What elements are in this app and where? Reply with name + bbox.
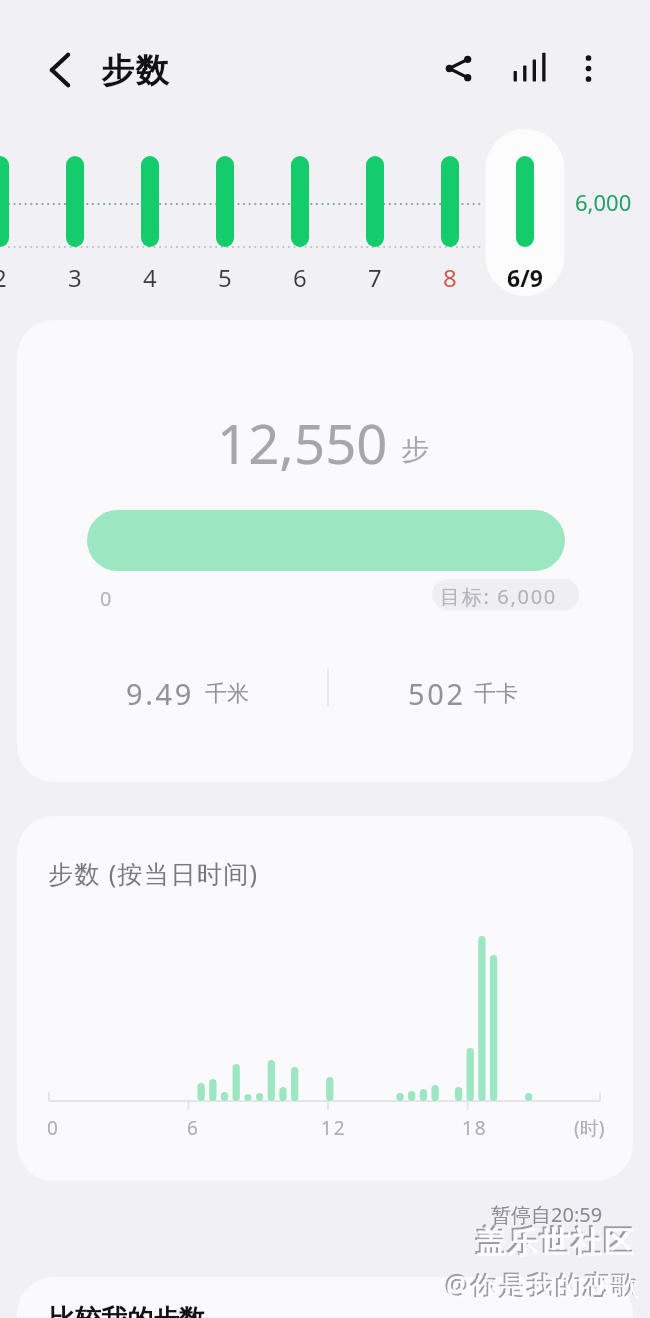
staticText: 步 [401,432,429,467]
staticText: 暂停自20:59 [491,1201,603,1228]
staticText: 盖乐世社区 [473,1222,633,1260]
staticText: 8 [443,261,457,294]
staticText: 5 [218,261,232,294]
staticText: 6,000 [575,187,632,217]
staticText: 3 [68,261,82,294]
button[interactable]: 比较我的步数 [17,1277,633,1318]
button[interactable]: Chart [500,40,554,94]
staticText: 2 [0,261,7,294]
button[interactable]: 8 [426,258,474,296]
button[interactable]: 步数 (按当日时间) [17,816,633,1181]
staticText: 千米 [205,680,249,708]
button[interactable]: 12,550 [17,320,633,782]
staticText: 18 [462,1115,488,1141]
staticText: 7 [368,261,382,294]
staticText: 步数 [101,50,171,92]
staticText: 12 [321,1115,347,1141]
staticText: 盖乐世社区 [475,1224,635,1262]
staticText: (时) [574,1115,605,1141]
staticText: 步数 (按当日时间) [48,856,259,890]
button[interactable]: 6/9 [485,258,564,296]
staticText: 0 [100,585,112,612]
button[interactable]: Share [432,42,485,95]
button[interactable]: 3 [51,258,99,296]
staticText: 4 [143,261,157,294]
staticText: 6/9 [507,262,543,293]
button[interactable]: 4 [126,258,174,296]
button[interactable]: 6 [276,258,324,296]
staticText: 9.49 [126,674,194,713]
staticText: @你是我的恋歌 [444,1265,639,1302]
staticText: @你是我的恋歌 [446,1267,641,1304]
staticText: 目标: 6,000 [440,583,557,610]
staticText: 6 [293,261,307,294]
staticText: 千卡 [474,680,518,708]
button[interactable]: More options [562,42,615,95]
button[interactable]: Back [34,44,86,96]
staticText: 502 [408,674,466,713]
button[interactable]: 7 [351,258,399,296]
staticText: 0 [47,1115,60,1141]
button[interactable]: 5 [201,258,249,296]
staticText: 12,550 [217,406,388,480]
button[interactable]: 2 [0,258,24,296]
staticText: 比较我的步数 [49,1303,205,1318]
staticText: 6 [187,1115,200,1141]
